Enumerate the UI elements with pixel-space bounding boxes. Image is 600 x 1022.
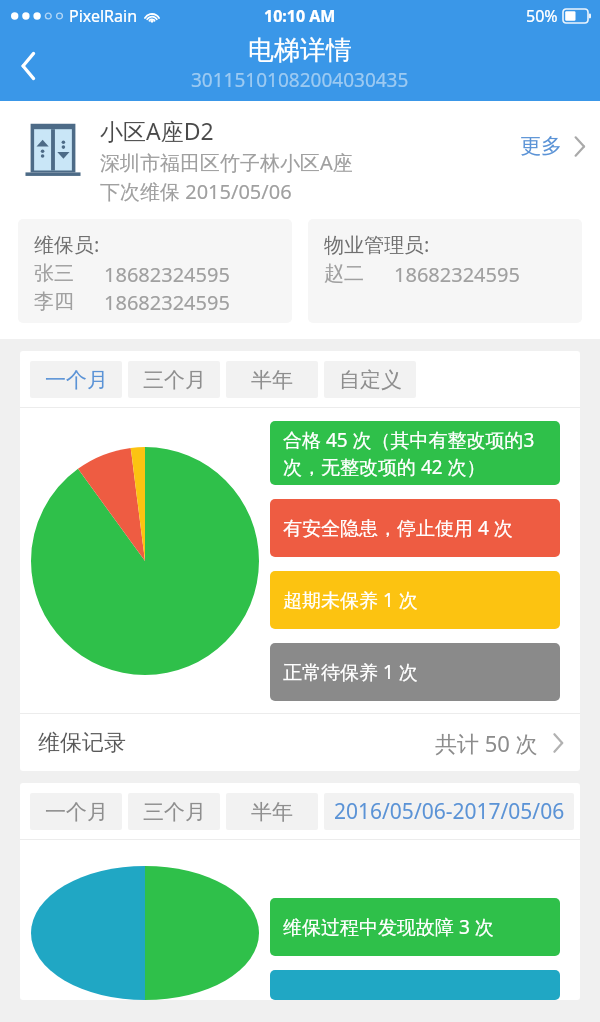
staticText: 18682324595 <box>104 289 230 316</box>
staticText: 半年 <box>251 799 293 825</box>
staticText: 李四 <box>34 289 74 314</box>
staticText: 更多 <box>520 133 562 159</box>
staticText: 一个月 <box>45 367 108 393</box>
staticText: 三个月 <box>143 799 206 825</box>
staticText: 超期未保养 1 次 <box>283 587 418 613</box>
button[interactable]: 维保过程中发现故障 3 次 <box>270 898 560 956</box>
button[interactable]: 自定义 <box>324 361 416 398</box>
staticText: 下次维保 2015/05/06 <box>100 178 292 205</box>
button[interactable]: 半年 <box>226 793 318 830</box>
button[interactable]: 正常待保养 1 次 <box>270 643 560 701</box>
button[interactable] <box>270 970 560 1000</box>
staticText: 赵二 <box>324 261 364 286</box>
button[interactable]: 超期未保养 1 次 <box>270 571 560 629</box>
button[interactable]: 一个月 <box>30 793 122 830</box>
staticText: 正常待保养 1 次 <box>283 659 418 685</box>
staticText: 自定义 <box>339 367 402 393</box>
button[interactable]: 有安全隐患，停止使用 4 次 <box>270 499 560 557</box>
button[interactable]: 更多 <box>520 133 586 159</box>
button[interactable]: 物业管理员: <box>308 219 582 323</box>
button[interactable]: 2016/05/06-2017/05/06 <box>324 793 574 830</box>
button[interactable]: 一个月 <box>30 361 122 398</box>
staticText: PixelRain <box>69 5 138 27</box>
staticText: 2016/05/06-2017/05/06 <box>334 797 565 826</box>
staticText: 物业管理员: <box>324 231 430 258</box>
button[interactable]: 维保员: <box>18 219 292 323</box>
staticText: 维保员: <box>34 231 100 258</box>
staticText: 30115101082004030435 <box>191 67 409 93</box>
staticText: 18682324595 <box>394 261 520 288</box>
staticText: 半年 <box>251 367 293 393</box>
staticText: 10:10 AM <box>264 5 336 27</box>
staticText: 小区A座D2 <box>100 115 214 146</box>
staticText: 一个月 <box>45 799 108 825</box>
button[interactable]: 合格 45 次（其中有整改项的3次，无整改项的 42 次） <box>270 421 560 485</box>
staticText: 电梯详情 <box>248 34 352 67</box>
staticText: 深圳市福田区竹子林小区A座 <box>100 149 353 176</box>
staticText: 50% <box>526 5 558 27</box>
staticText: 三个月 <box>143 367 206 393</box>
staticText: 有安全隐患，停止使用 4 次 <box>283 515 513 541</box>
button[interactable]: Back <box>0 38 56 94</box>
button[interactable]: 三个月 <box>128 361 220 398</box>
staticText: 18682324595 <box>104 261 230 288</box>
button[interactable]: 小区A座D2 <box>0 101 600 205</box>
button[interactable]: 三个月 <box>128 793 220 830</box>
staticText: 合格 45 次（其中有整改项的3次，无整改项的 42 次） <box>283 427 547 479</box>
button[interactable]: 半年 <box>226 361 318 398</box>
staticText: 共计 50 次 <box>435 728 538 758</box>
staticText: 维保过程中发现故障 3 次 <box>283 914 494 940</box>
staticText: 张三 <box>34 261 74 286</box>
button[interactable]: 维保记录 <box>20 714 580 771</box>
staticText: 维保记录 <box>38 729 126 757</box>
